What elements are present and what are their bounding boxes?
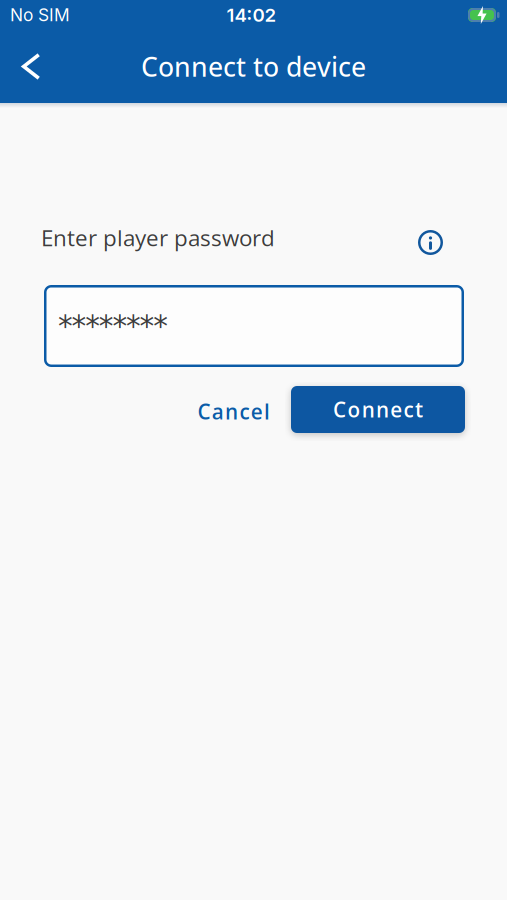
button[interactable]: Player password field — [44, 285, 464, 367]
staticText: Connect to device — [141, 48, 366, 85]
staticText: Enter player password — [41, 222, 275, 253]
staticText: Connect — [333, 395, 423, 423]
button[interactable]: Back — [0, 43, 40, 90]
staticText: No SIM — [10, 4, 70, 25]
staticText: Cancel — [197, 397, 270, 425]
button[interactable]: Cancel — [197, 395, 270, 423]
staticText: ******** — [58, 309, 168, 343]
button[interactable]: Password info — [418, 230, 443, 255]
button[interactable]: Connect — [291, 386, 465, 433]
staticText: 14:02 — [226, 4, 276, 26]
